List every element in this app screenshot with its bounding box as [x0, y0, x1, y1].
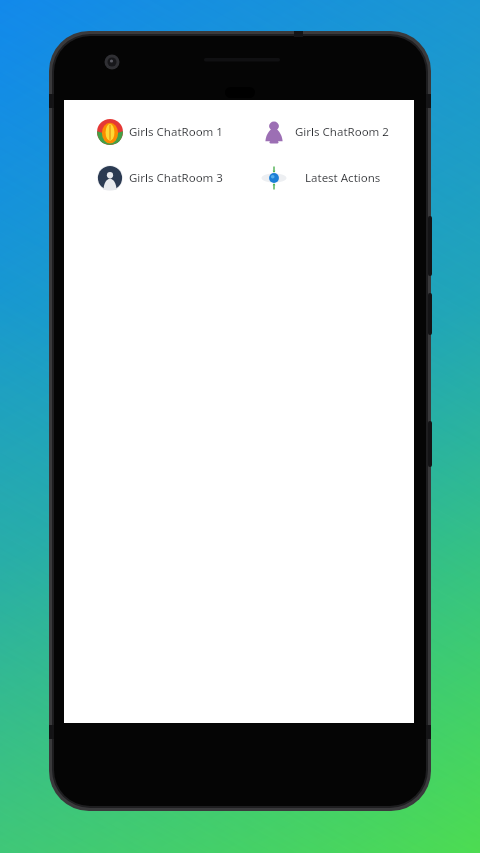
staticText: Latest Actions: [305, 170, 381, 186]
other: Girls ChatRoom 2 avatar: [261, 119, 287, 145]
other: Girls ChatRoom 1 avatar: [97, 119, 123, 145]
button[interactable]: Girls ChatRoom 2 avatar: [239, 117, 414, 147]
staticText: Girls ChatRoom 2: [295, 124, 389, 140]
other: Girls ChatRoom 3 avatar: [97, 165, 123, 191]
button[interactable]: Latest Actions: [239, 163, 414, 193]
button[interactable]: Girls ChatRoom 1 avatar: [64, 117, 239, 147]
staticText: Girls ChatRoom 3: [129, 170, 223, 186]
other: Latest Actions: [261, 165, 287, 191]
button[interactable]: Girls ChatRoom 3 avatar: [64, 163, 239, 193]
staticText: Girls ChatRoom 1: [129, 124, 223, 140]
